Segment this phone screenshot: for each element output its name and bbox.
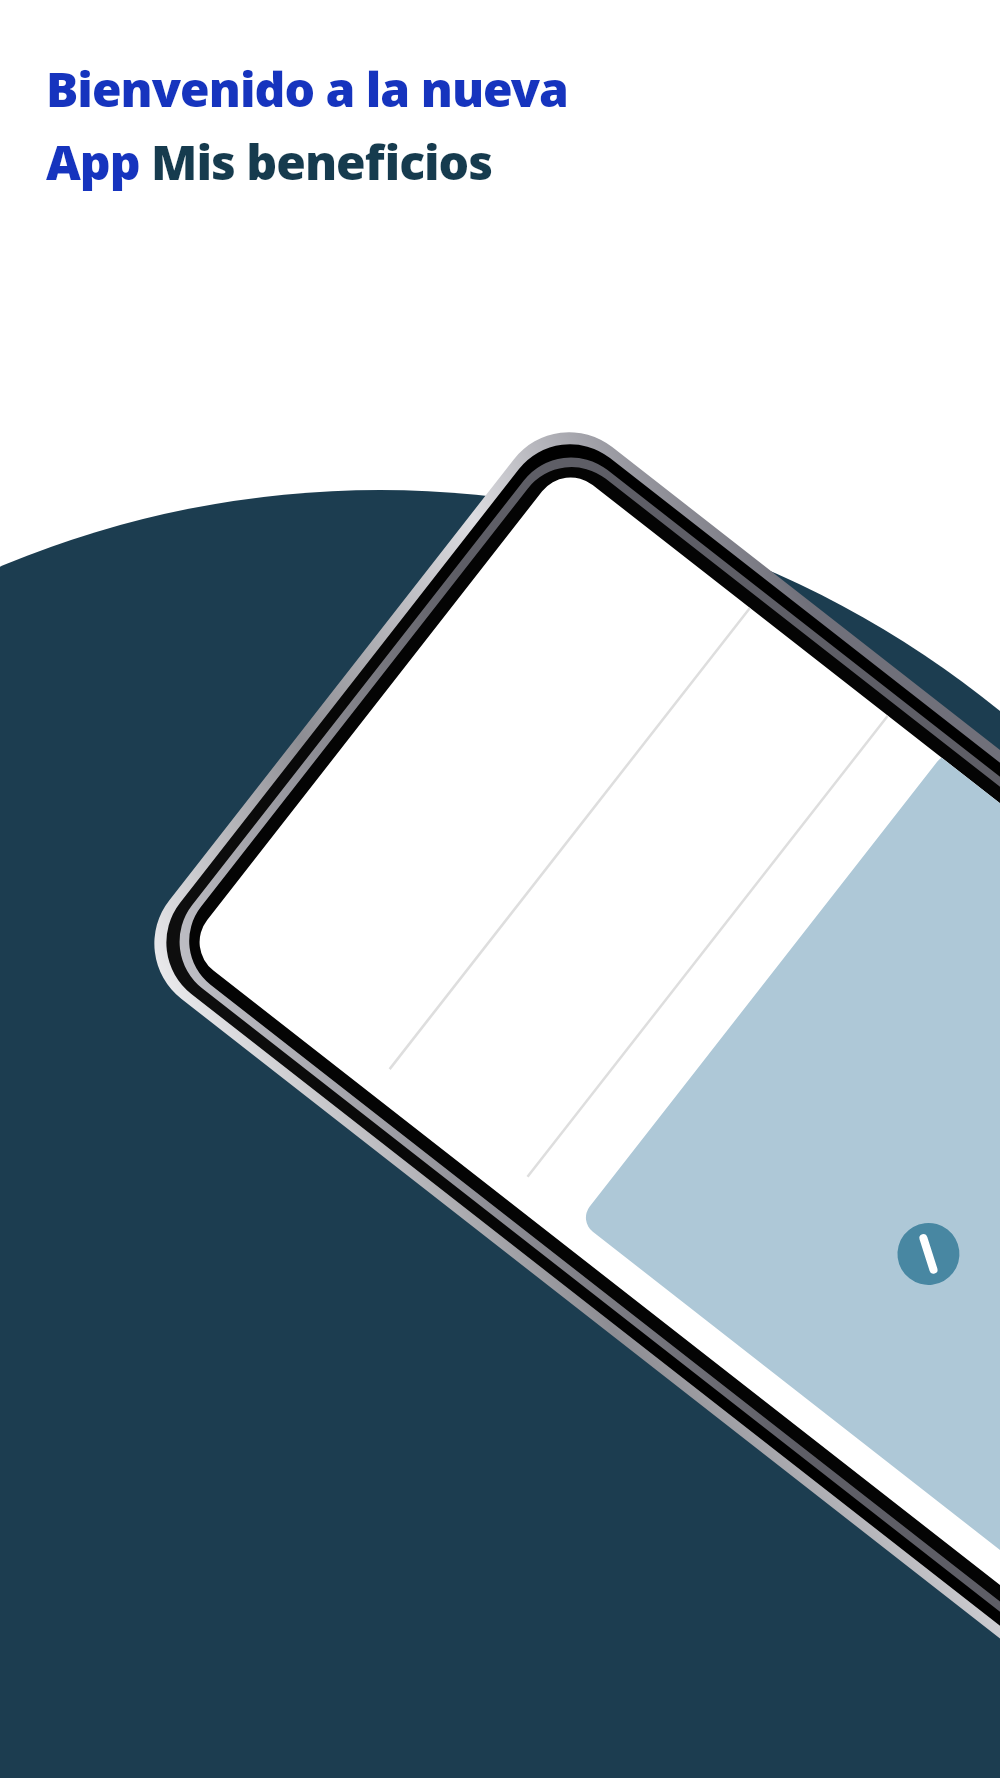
staticText: Bienvenido a la nueva	[46, 56, 568, 121]
button[interactable]: Notificaciones	[0, 0, 1000, 1778]
staticText: App Mis beneficios	[46, 129, 493, 194]
